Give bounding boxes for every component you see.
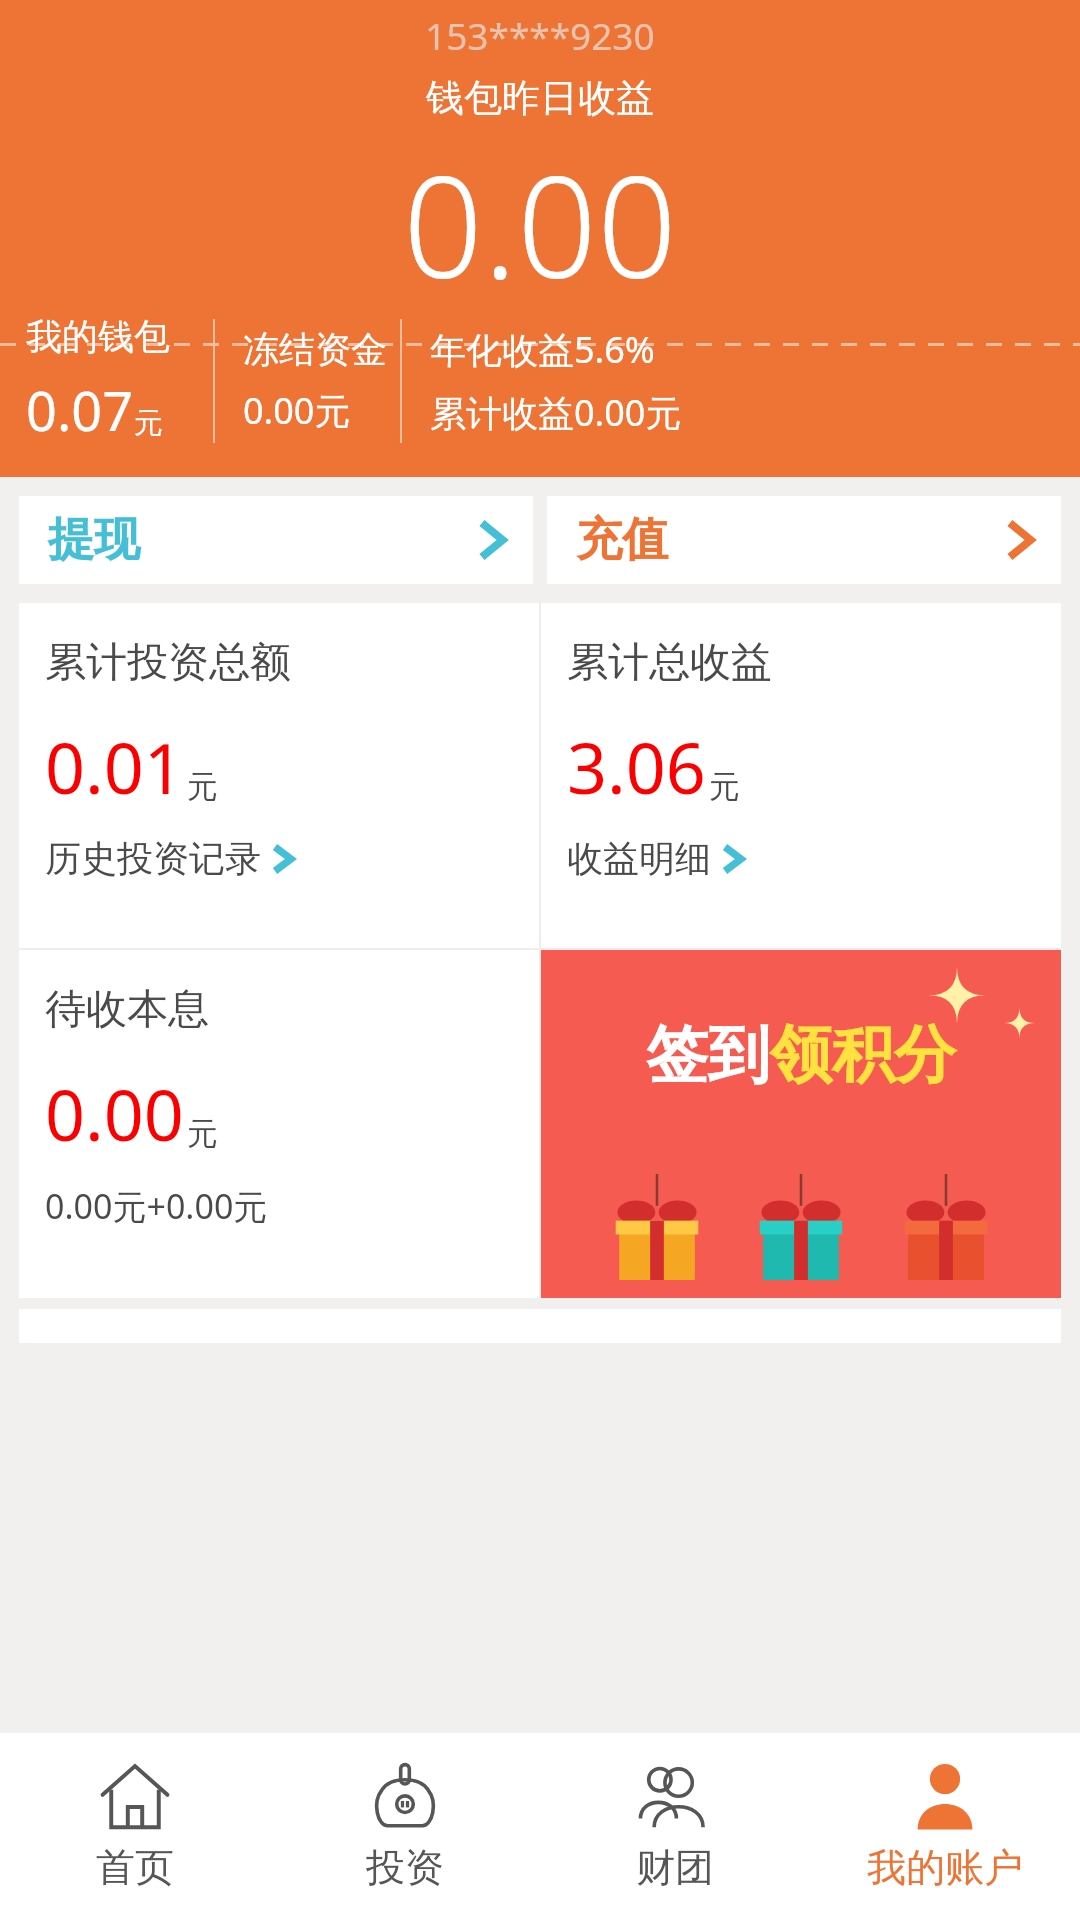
staticText: 0.00 [403, 128, 677, 319]
staticText: 元 [187, 767, 218, 806]
staticText: 我的钱包 [26, 314, 170, 359]
button[interactable]: 累计投资总额 [19, 603, 539, 948]
button[interactable]: 充值 [547, 496, 1061, 584]
staticText: 累计总收益 [567, 637, 772, 689]
staticText: 年化收益5.6% [430, 325, 655, 374]
staticText: 签到 [646, 1016, 770, 1094]
button[interactable]: 我的账户 [810, 1733, 1080, 1920]
staticText: 0.00元 [243, 386, 351, 435]
staticText: 3.06 [567, 719, 706, 814]
staticText: 历史投资记录 [45, 836, 261, 881]
staticText: 0.00元+0.00元 [45, 1183, 268, 1229]
staticText: 收益明细 [567, 836, 711, 881]
staticText: 0.07 [26, 373, 134, 447]
button[interactable]: 累计总收益 [541, 603, 1061, 948]
staticText: 投资 [366, 1843, 444, 1892]
staticText: 元 [134, 405, 163, 442]
button[interactable]: 投资 [270, 1733, 540, 1920]
button[interactable]: 签到领积分 [541, 950, 1061, 1298]
button[interactable]: 提现 [19, 496, 533, 584]
staticText: 元 [187, 1114, 218, 1153]
staticText: 0.01 [45, 719, 184, 814]
staticText: 充值 [576, 511, 668, 569]
staticText: 153****9230 [425, 10, 655, 60]
staticText: 财团 [636, 1843, 714, 1892]
staticText: 0.00 [45, 1066, 184, 1161]
staticText: 累计投资总额 [45, 637, 291, 689]
staticText: 我的账户 [867, 1843, 1023, 1892]
staticText: 元 [709, 767, 740, 806]
staticText: 提现 [48, 511, 140, 569]
staticText: 冻结资金 [243, 327, 387, 372]
staticText: 钱包昨日收益 [426, 74, 654, 122]
button[interactable]: 财团 [540, 1733, 810, 1920]
staticText: 待收本息 [45, 984, 209, 1036]
staticText: 首页 [96, 1843, 174, 1892]
staticText: 领积分 [770, 1016, 956, 1094]
staticText: 累计收益0.00元 [430, 388, 682, 437]
button[interactable]: 首页 [0, 1733, 270, 1920]
button[interactable]: 待收本息 [19, 950, 539, 1298]
